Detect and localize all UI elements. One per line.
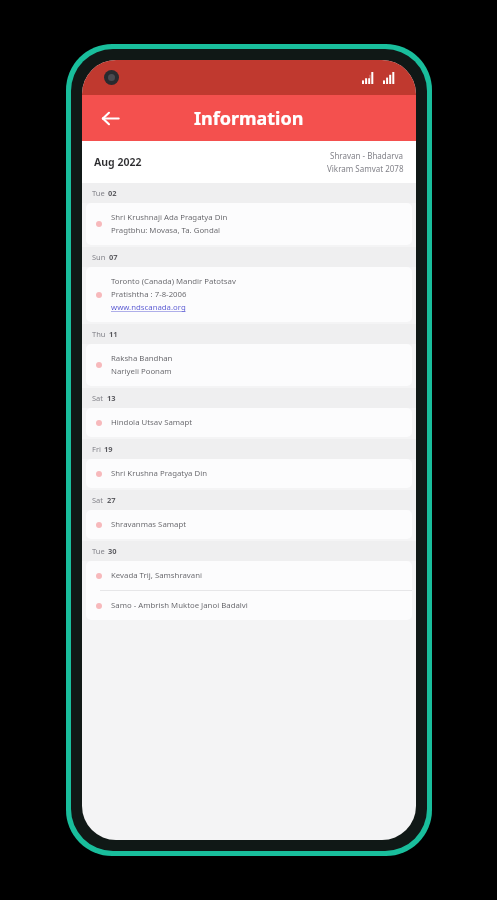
staticText: 07 <box>109 252 118 262</box>
staticText: 11 <box>109 329 118 339</box>
staticText: Shri Krushnaji Ada Pragatya Din <box>111 212 228 223</box>
staticText: Vikram Samvat 2078 <box>327 163 404 174</box>
staticText: 27 <box>107 495 116 505</box>
staticText: Sat <box>92 495 104 505</box>
staticText: Sat <box>92 393 104 403</box>
staticText: Shravanmas Samapt <box>111 519 187 530</box>
staticText: 30 <box>108 546 117 556</box>
button[interactable]: Back <box>90 98 130 138</box>
staticText: Shravan - Bhadarva <box>330 150 404 161</box>
staticText: Fri <box>92 444 101 454</box>
staticText: Toronto (Canada) Mandir Patotsav <box>111 276 236 287</box>
staticText: Pratishtha : 7-8-2006 <box>111 289 187 300</box>
staticText: Thu <box>92 329 106 339</box>
button[interactable]: Kevada Trij, Samshravani <box>86 561 412 590</box>
button[interactable]: Shri Krushnaji Ada Pragatya Din <box>86 203 412 245</box>
staticText: 13 <box>107 393 116 403</box>
button[interactable]: Raksha Bandhan <box>86 344 412 386</box>
button[interactable]: Samo - Ambrish Muktoe Janoi Badalvi <box>86 591 412 620</box>
staticText: Pragtbhu: Movasa, Ta. Gondal <box>111 225 221 236</box>
staticText: Kevada Trij, Samshravani <box>111 570 203 581</box>
staticText: Sun <box>92 252 106 262</box>
button[interactable]: Shravanmas Samapt <box>86 510 412 539</box>
staticText: 19 <box>104 444 113 454</box>
staticText: Shri Krushna Pragatya Din <box>111 468 208 479</box>
staticText: Tue <box>92 546 105 556</box>
staticText: 02 <box>108 188 117 198</box>
staticText: Tue <box>92 188 105 198</box>
staticText: Raksha Bandhan <box>111 353 173 364</box>
staticText: Hindola Utsav Samapt <box>111 417 193 428</box>
staticText: Samo - Ambrish Muktoe Janoi Badalvi <box>111 600 248 611</box>
staticText: Nariyeli Poonam <box>111 366 172 377</box>
button[interactable]: Toronto (Canada) Mandir Patotsav <box>86 267 412 322</box>
staticText: Aug 2022 <box>94 155 142 169</box>
button[interactable]: Hindola Utsav Samapt <box>86 408 412 437</box>
staticText: www.ndscanada.org <box>111 302 186 313</box>
button[interactable]: Shri Krushna Pragatya Din <box>86 459 412 488</box>
staticText: Information <box>194 106 304 131</box>
